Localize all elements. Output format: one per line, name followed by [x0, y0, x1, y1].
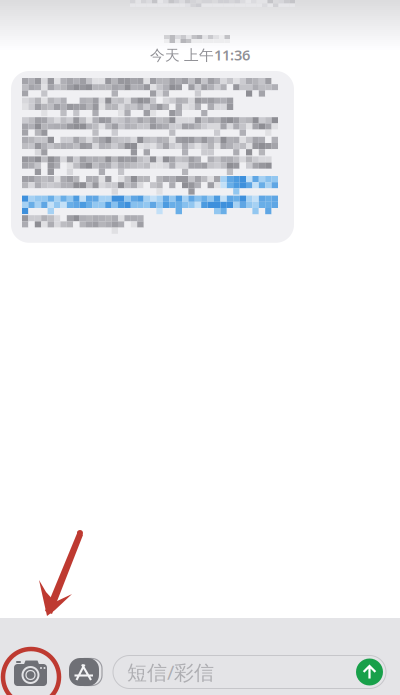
- staticText: 今天 上午11:36: [150, 45, 250, 64]
- staticText: 短信/彩信: [127, 659, 214, 685]
- button[interactable]: App Store: [67, 658, 101, 686]
- button[interactable]: Camera: [14, 658, 47, 686]
- button[interactable]: 短信/彩信: [113, 655, 386, 688]
